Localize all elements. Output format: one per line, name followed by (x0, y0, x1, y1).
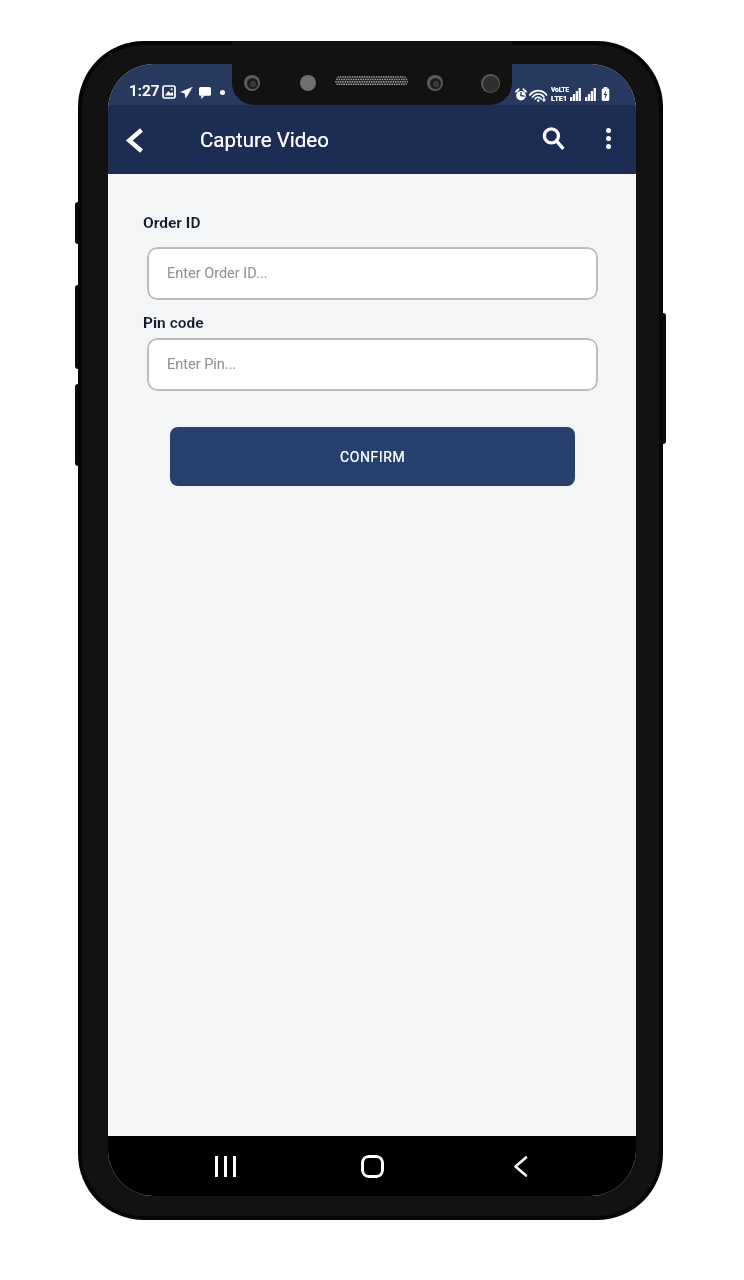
staticText: Order ID (143, 214, 201, 232)
staticText: Enter Order ID... (167, 265, 268, 282)
button[interactable]: Enter Pin... (147, 338, 598, 391)
staticText: LTE1 (551, 94, 568, 103)
button[interactable]: More options (584, 114, 632, 162)
button[interactable]: Home (348, 1142, 396, 1190)
button[interactable]: Search (528, 113, 580, 165)
staticText: VoLTE (551, 86, 570, 94)
staticText: Enter Pin... (167, 356, 237, 373)
button[interactable]: Recent apps (201, 1142, 249, 1190)
staticText: 1:27 (129, 82, 160, 100)
button[interactable]: Navigate back (111, 116, 159, 164)
staticText: Capture Video (200, 128, 329, 152)
staticText: CONFIRM (340, 449, 406, 465)
button[interactable]: Enter Order ID... (147, 247, 598, 300)
staticText: Pin code (143, 314, 204, 332)
button[interactable]: CONFIRM (170, 427, 575, 486)
button[interactable]: Back (496, 1142, 544, 1190)
